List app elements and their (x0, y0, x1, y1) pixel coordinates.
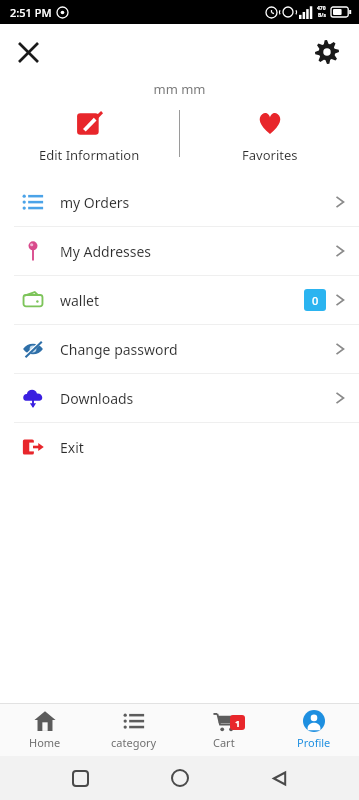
staticText: my Orders (60, 193, 130, 212)
staticText: 1 (235, 717, 241, 729)
staticText: Cart (213, 735, 235, 750)
staticText: My Addresses (60, 242, 152, 261)
button[interactable]: Close (8, 32, 48, 72)
button[interactable]: Exit (0, 423, 359, 471)
staticText: Change password (60, 340, 178, 359)
button[interactable]: category (89, 706, 179, 754)
staticText: wallet (60, 291, 100, 310)
staticText: Profile (297, 735, 331, 750)
button[interactable]: Change password (0, 325, 359, 373)
button[interactable]: wallet (0, 276, 359, 324)
staticText: 470 (317, 5, 326, 12)
button[interactable]: 1 (179, 706, 269, 754)
button[interactable]: my Orders (0, 178, 359, 226)
staticText: category (111, 735, 157, 750)
staticText: Edit Information (39, 146, 140, 164)
staticText: Exit (60, 438, 84, 457)
staticText: 2:51 PM (10, 5, 52, 20)
button[interactable]: Home (0, 706, 89, 754)
button[interactable]: Favorites (230, 108, 310, 166)
staticText: Home (29, 735, 61, 750)
staticText: Favorites (242, 146, 298, 164)
button[interactable]: Recents (60, 758, 100, 798)
button[interactable]: Downloads (0, 374, 359, 422)
button[interactable]: Profile (269, 706, 359, 754)
staticText: 0 (312, 293, 319, 308)
staticText: B/s (318, 12, 326, 19)
button[interactable]: Back (259, 758, 299, 798)
staticText: Downloads (60, 389, 134, 408)
staticText: mm mm (0, 80, 359, 98)
button[interactable]: Home (160, 758, 200, 798)
button[interactable]: Settings (305, 30, 349, 74)
button[interactable]: My Addresses (0, 227, 359, 275)
button[interactable]: Edit Information (27, 108, 152, 166)
